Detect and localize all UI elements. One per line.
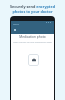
button[interactable]: Add photo: [28, 54, 39, 66]
staticText: Take a photo of your medication label: [11, 41, 54, 44]
staticText: Medication photo: [11, 35, 54, 39]
staticText: photos to your doctor: [12, 9, 53, 14]
staticText: Inbox: [13, 23, 19, 26]
staticText: Securely send encrypted: [10, 4, 55, 9]
